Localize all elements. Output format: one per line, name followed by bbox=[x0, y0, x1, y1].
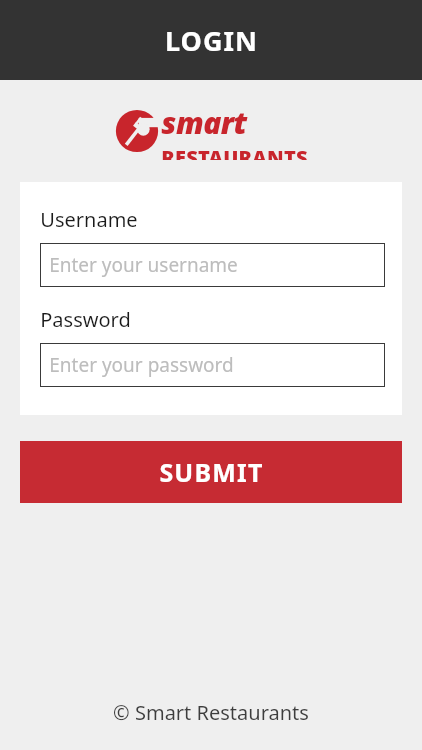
button[interactable]: Enter your username bbox=[40, 243, 385, 287]
staticText: Enter your password bbox=[49, 352, 234, 378]
staticText: smart bbox=[161, 102, 247, 143]
staticText: Username bbox=[40, 206, 138, 233]
staticText: LOGIN bbox=[165, 22, 258, 59]
button[interactable]: Enter your password bbox=[40, 343, 385, 387]
staticText: Enter your username bbox=[49, 252, 238, 278]
button[interactable]: SUBMIT bbox=[20, 441, 402, 503]
staticText: Password bbox=[40, 306, 131, 333]
other: Smart Restaurants logo bbox=[115, 109, 159, 153]
staticText: SUBMIT bbox=[159, 455, 264, 489]
staticText: © Smart Restaurants bbox=[113, 699, 309, 726]
staticText: RESTAURANTS bbox=[161, 144, 308, 160]
